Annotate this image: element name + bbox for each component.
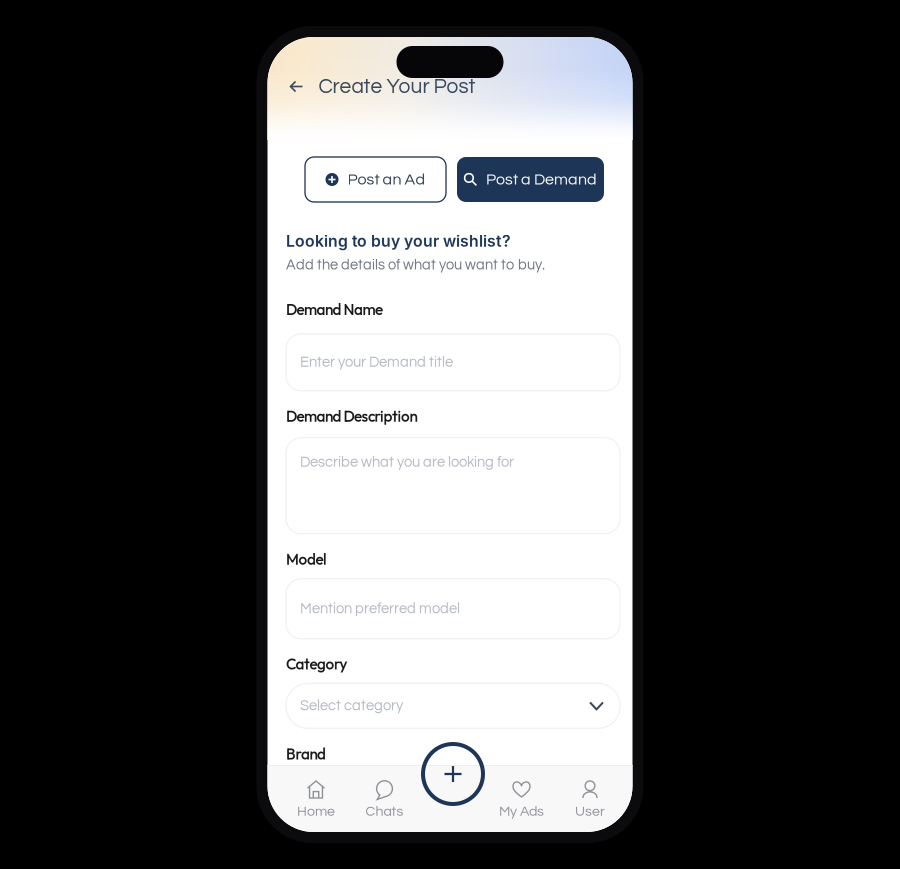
staticText: Model [286,549,327,569]
button[interactable]: User [556,781,624,818]
staticText: Add the details of what you want to buy. [286,258,545,273]
staticText: Post a Demand [486,171,597,188]
button[interactable]: Back [283,73,309,100]
staticText: Home [297,804,335,819]
staticText: Brand [286,744,326,763]
staticText: My Ads [499,804,544,819]
staticText: Mention preferred model [300,601,460,616]
button[interactable]: Chats [350,781,419,818]
staticText: User [575,804,605,819]
staticText: Post an Ad [347,171,425,188]
staticText: Demand Description [286,406,417,426]
button[interactable]: Home [282,781,350,818]
staticText: Demand Name [286,300,383,319]
staticText: Create Your Post [318,76,475,97]
button[interactable]: My Ads [487,781,556,818]
staticText: Looking to buy your wishlist? [286,231,511,250]
staticText: Select category [300,698,403,713]
staticText: Chats [365,804,403,819]
staticText: Category [286,654,347,673]
staticText: Enter your Demand title [300,355,453,370]
button[interactable]: Post a Demand [457,157,604,202]
button[interactable]: Create new post [421,742,485,806]
staticText: Describe what you are looking for [300,455,514,470]
button[interactable]: Post an Ad [305,157,446,202]
